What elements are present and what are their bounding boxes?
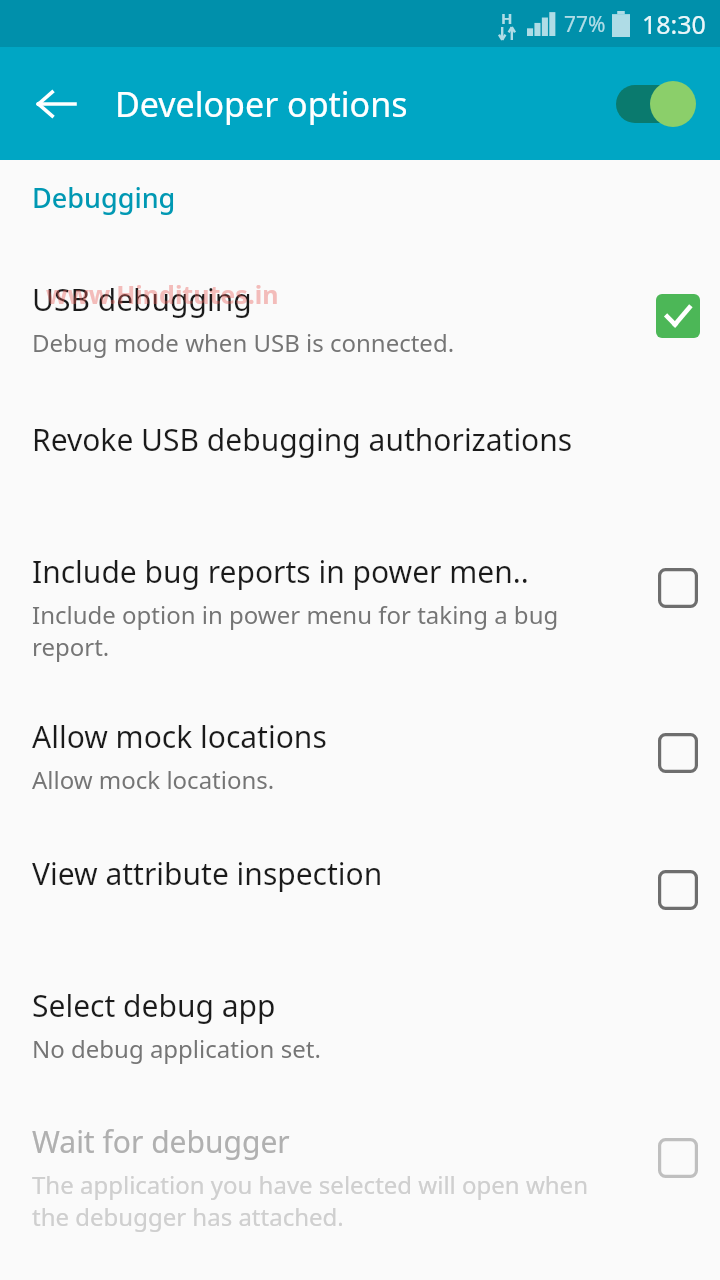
staticText: Include option in power menu for taking … (32, 598, 602, 663)
button[interactable]: Allow mock locations (0, 716, 720, 796)
button[interactable]: Back (20, 68, 92, 140)
staticText: Debugging (32, 179, 176, 216)
staticText: Developer options (115, 81, 408, 127)
staticText: No debug application set. (32, 1032, 628, 1065)
button[interactable]: Include bug reports in power men.. (0, 551, 720, 663)
staticText: Wait for debugger (32, 1121, 290, 1162)
button[interactable]: Revoke USB debugging authorizations (0, 419, 720, 493)
staticText: H (501, 8, 513, 28)
staticText: www.Hinditutes.in (46, 277, 279, 311)
staticText: Revoke USB debugging authorizations (32, 419, 573, 460)
button[interactable]: USB debugging (0, 279, 720, 359)
staticText: Select debug app (32, 985, 276, 1026)
staticText: The application you have selected will o… (32, 1168, 602, 1233)
button[interactable]: Checked (656, 294, 700, 338)
staticText: 77% (564, 10, 606, 39)
button[interactable]: Developer options on/off (606, 66, 702, 142)
staticText: Include bug reports in power men.. (32, 551, 529, 592)
staticText: Debug mode when USB is connected. (32, 326, 628, 359)
staticText: View attribute inspection (32, 853, 383, 894)
button[interactable]: Select debug app (0, 985, 720, 1065)
button[interactable]: Unchecked (656, 566, 700, 610)
button[interactable]: Unchecked (656, 1136, 700, 1180)
staticText: Allow mock locations. (32, 763, 628, 796)
staticText: Allow mock locations (32, 716, 327, 757)
button[interactable]: Unchecked (656, 731, 700, 775)
staticText: USB debugging (32, 279, 252, 320)
button[interactable]: Wait for debugger (0, 1121, 720, 1233)
staticText: 18:30 (642, 7, 706, 41)
button[interactable]: Unchecked (656, 868, 700, 912)
button[interactable]: View attribute inspection (0, 853, 720, 927)
